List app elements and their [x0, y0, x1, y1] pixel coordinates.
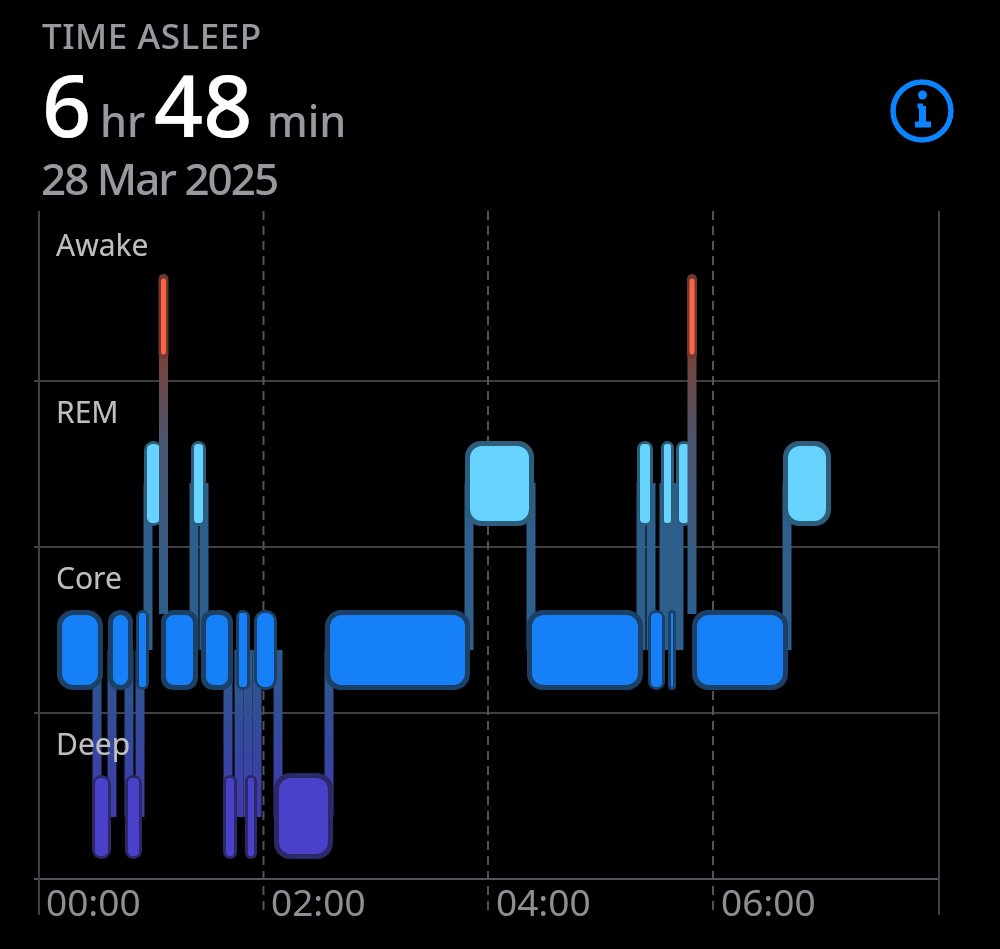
staticText: 28 Mar 2025: [41, 148, 278, 208]
staticText: 06:00: [721, 876, 816, 926]
staticText: REM: [56, 391, 119, 432]
staticText: 04:00: [496, 876, 591, 926]
staticText: TIME ASLEEP: [42, 12, 262, 60]
staticText: 02:00: [271, 876, 366, 926]
staticText: Awake: [56, 224, 149, 265]
staticText: Core: [56, 557, 122, 598]
staticText: Deep: [56, 723, 131, 764]
staticText: 00:00: [46, 876, 141, 926]
staticText: hr: [100, 91, 146, 150]
staticText: 48: [154, 45, 253, 162]
staticText: 6: [42, 45, 92, 162]
button[interactable]: [890, 79, 954, 143]
staticText: min: [267, 91, 347, 150]
